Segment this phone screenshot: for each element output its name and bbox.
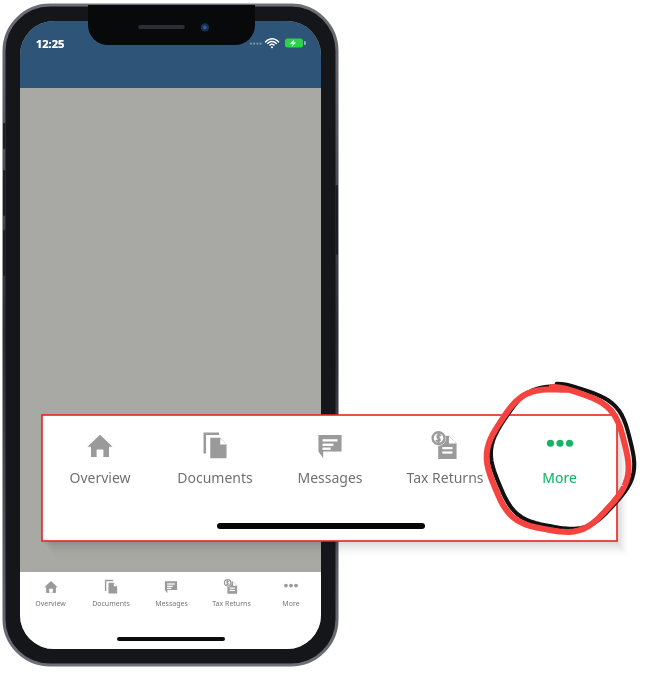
staticText: Messages [155,599,188,609]
button[interactable]: Tax Returns [201,578,261,609]
button[interactable]: More [261,578,321,609]
staticText: 12:25 [36,36,65,51]
button[interactable]: Messages [141,578,201,609]
staticText: Documents [92,599,130,609]
staticText: More [542,468,577,487]
button[interactable]: Documents [81,578,141,609]
button[interactable]: More [502,429,617,487]
button[interactable]: Messages [272,429,387,487]
staticText: Overview [69,468,131,487]
staticText: Tax Returns [406,468,484,487]
staticText: Messages [297,468,363,487]
staticText: Documents [177,468,253,487]
button[interactable]: Overview [20,578,81,609]
staticText: Overview [35,599,66,609]
staticText: Tax Returns [212,599,251,609]
staticText: More [282,599,300,609]
button[interactable]: Overview [42,429,157,487]
button[interactable]: Tax Returns [387,429,502,487]
button[interactable]: Documents [157,429,272,487]
